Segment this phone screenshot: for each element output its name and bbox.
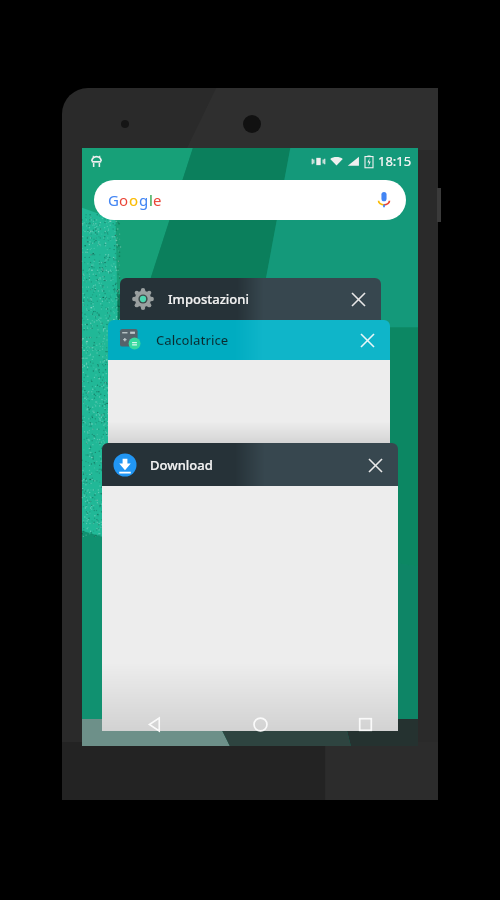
button[interactable]: Calcolatrice [108,320,390,445]
button[interactable]: Download [102,443,398,731]
button[interactable]: Back [102,702,208,746]
staticText: 18:15 [378,152,412,170]
staticText: o [119,190,129,210]
staticText: G [108,190,119,210]
button[interactable]: Close Download [362,452,388,478]
staticText: g [139,190,149,210]
button[interactable]: Recents [313,702,418,746]
staticText: l [149,190,153,210]
staticText: o [129,190,139,210]
staticText: e [153,190,162,210]
staticText: Impostazioni [168,290,249,308]
button[interactable]: Close Impostazioni [345,286,371,312]
staticText: Download [150,456,213,474]
button[interactable]: Home [208,702,313,746]
other: Voice search [376,192,392,208]
staticText: Calcolatrice [156,331,229,349]
button[interactable]: G [94,180,406,220]
button[interactable]: Close Calcolatrice [354,327,380,353]
button[interactable]: Impostazioni [120,278,381,320]
